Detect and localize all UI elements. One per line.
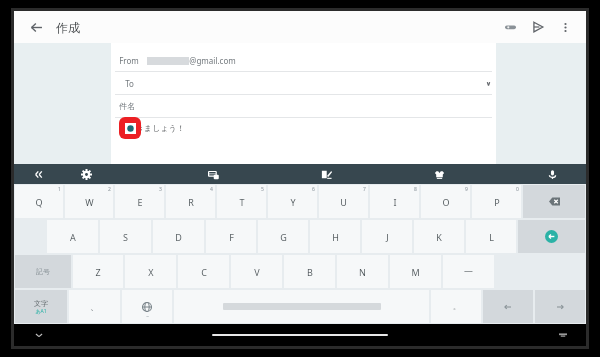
button[interactable]: Collapse: [28, 164, 48, 184]
staticText: I: [393, 196, 397, 208]
button[interactable]: L: [466, 220, 516, 253]
button[interactable]: Voice input: [542, 164, 562, 184]
button[interactable]: Send: [526, 15, 550, 39]
staticText: T: [239, 196, 245, 208]
button[interactable]: Recent apps: [554, 326, 572, 344]
button[interactable]: K: [414, 220, 464, 253]
button[interactable]: F: [206, 220, 256, 253]
button[interactable]: I: [370, 185, 419, 218]
staticText: 3: [159, 186, 162, 193]
button[interactable]: Settings: [76, 164, 96, 184]
button[interactable]: From: [111, 49, 496, 71]
button[interactable]: Keyboard layout: [203, 164, 223, 184]
staticText: 1: [58, 186, 61, 193]
staticText: 5: [261, 186, 264, 193]
button[interactable]: Move left: [483, 290, 533, 323]
staticText: 4: [210, 186, 213, 193]
button[interactable]: C: [178, 255, 229, 288]
button[interactable]: Space: [174, 290, 429, 323]
staticText: @gmail.com: [189, 55, 236, 66]
staticText: W: [85, 196, 94, 208]
button[interactable]: H: [310, 220, 360, 253]
button[interactable]: N: [337, 255, 388, 288]
staticText: 件名: [119, 101, 135, 111]
staticText: X: [148, 266, 154, 278]
staticText: 6: [312, 186, 315, 193]
staticText: B: [307, 266, 313, 278]
staticText: 記号: [36, 267, 50, 276]
button[interactable]: X: [125, 255, 176, 288]
staticText: E: [137, 196, 143, 208]
staticText: K: [436, 231, 442, 243]
staticText: 文字: [34, 299, 48, 308]
staticText: H: [332, 231, 339, 243]
staticText: G: [280, 231, 287, 243]
staticText: 一: [464, 266, 473, 277]
button[interactable]: D: [153, 220, 204, 253]
button[interactable]: Q: [15, 185, 63, 218]
staticText: P: [494, 196, 500, 208]
staticText: L: [489, 231, 494, 243]
button[interactable]: More options: [554, 16, 576, 38]
staticText: R: [188, 196, 194, 208]
staticText: S: [123, 231, 128, 243]
button[interactable]: V: [231, 255, 282, 288]
button[interactable]: E: [115, 185, 164, 218]
button[interactable]: Z: [73, 255, 123, 288]
button[interactable]: Backspace: [523, 185, 585, 218]
staticText: 2: [108, 186, 111, 193]
staticText: N: [359, 266, 366, 278]
button[interactable]: S: [100, 220, 151, 253]
staticText: J: [386, 231, 389, 243]
button[interactable]: P: [472, 185, 521, 218]
button[interactable]: U: [319, 185, 368, 218]
button[interactable]: R: [166, 185, 215, 218]
button[interactable]: J: [362, 220, 412, 253]
button[interactable]: Hide keyboard: [30, 326, 48, 344]
button[interactable]: Enter: [518, 220, 585, 253]
staticText: Y: [290, 196, 296, 208]
staticText: M: [411, 266, 420, 278]
staticText: 8: [414, 186, 417, 193]
button[interactable]: 一: [443, 255, 494, 288]
button[interactable]: 文字: [15, 290, 67, 323]
staticText: 。: [453, 302, 460, 311]
staticText: U: [340, 196, 347, 208]
staticText: C: [201, 266, 207, 278]
button[interactable]: Y: [268, 185, 317, 218]
button[interactable]: Home: [212, 334, 388, 336]
button[interactable]: Theme: [429, 164, 449, 184]
button[interactable]: Move right: [535, 290, 585, 323]
staticText: D: [175, 231, 182, 243]
button[interactable]: 記号: [15, 255, 71, 288]
staticText: 作成: [56, 20, 80, 35]
staticText: 、: [90, 301, 99, 312]
button[interactable]: B: [284, 255, 335, 288]
staticText: Q: [35, 196, 43, 208]
staticText: を行きましょう！: [119, 123, 185, 133]
staticText: O: [442, 196, 450, 208]
button[interactable]: Notes: [316, 164, 336, 184]
button[interactable]: G: [258, 220, 308, 253]
button[interactable]: A: [47, 220, 98, 253]
button[interactable]: To: [111, 72, 496, 94]
button[interactable]: Attach: [498, 15, 522, 39]
button[interactable]: W: [65, 185, 113, 218]
button[interactable]: T: [217, 185, 266, 218]
staticText: _: [146, 311, 149, 318]
button[interactable]: Change language: [122, 290, 172, 323]
staticText: 9: [465, 186, 468, 193]
staticText: From: [119, 55, 139, 66]
staticText: あA1: [35, 308, 47, 315]
staticText: 0: [516, 186, 519, 193]
button[interactable]: M: [390, 255, 441, 288]
staticText: To: [125, 78, 134, 89]
staticText: A: [70, 231, 76, 243]
button[interactable]: 件名: [111, 95, 496, 117]
button[interactable]: Back: [24, 15, 48, 39]
button[interactable]: Selected text marker: [119, 117, 141, 139]
staticText: 7: [363, 186, 366, 193]
button[interactable]: O: [421, 185, 470, 218]
